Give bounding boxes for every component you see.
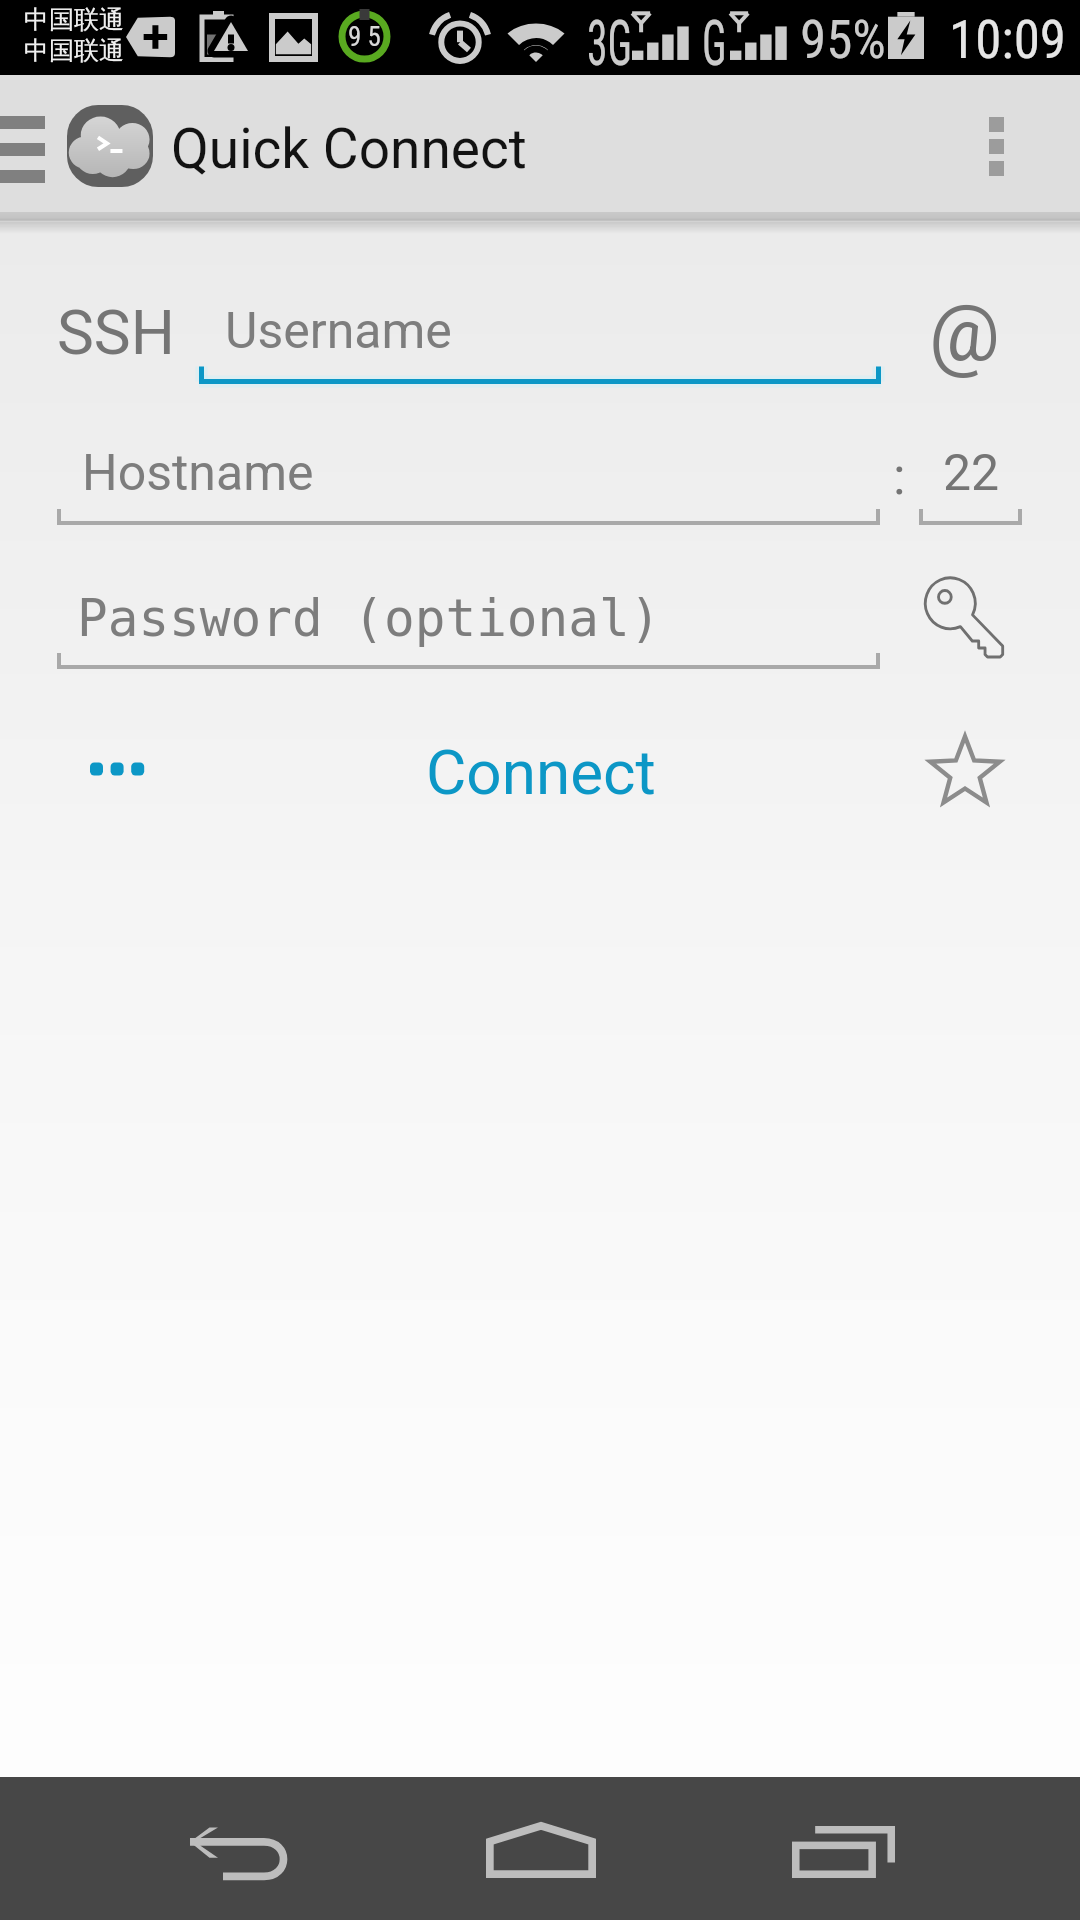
staticText: Hostname — [82, 444, 314, 503]
button[interactable]: Open navigation drawer — [0, 75, 62, 213]
button[interactable]: Use private key — [898, 560, 1028, 680]
button[interactable]: Connect — [380, 712, 700, 828]
button[interactable]: Recent apps — [720, 1777, 1080, 1920]
staticText: 22 — [943, 444, 1000, 503]
staticText: Connect — [426, 736, 656, 809]
button[interactable]: 22 — [919, 430, 1022, 525]
button[interactable]: Save to favourites — [898, 712, 1028, 828]
staticText: Password (optional) — [77, 589, 661, 648]
button[interactable]: More connection options — [40, 712, 200, 828]
staticText: Username — [225, 302, 452, 361]
staticText: Quick Connect — [171, 117, 527, 181]
staticText: 10:09 — [949, 9, 1067, 71]
button[interactable]: Home — [360, 1777, 720, 1920]
staticText: 中国联通 — [24, 35, 124, 66]
staticText: 9 5 — [348, 21, 381, 53]
button[interactable]: More options — [950, 75, 1045, 213]
staticText: 中国联通 — [24, 4, 124, 35]
button[interactable]: Username — [199, 288, 881, 384]
staticText: G — [702, 7, 727, 81]
staticText: 3G — [587, 7, 632, 81]
staticText: : — [893, 446, 906, 507]
button[interactable]: Select user — [898, 281, 1028, 391]
staticText: SSH — [57, 296, 175, 369]
staticText: 95% — [800, 9, 886, 71]
staticText: @ — [929, 287, 1000, 380]
button[interactable]: Hostname — [57, 430, 880, 525]
button[interactable]: Back — [0, 1777, 360, 1920]
button[interactable]: Password (optional) — [57, 574, 880, 669]
